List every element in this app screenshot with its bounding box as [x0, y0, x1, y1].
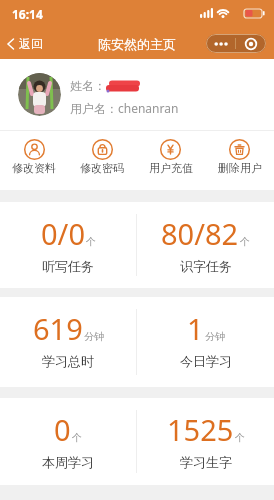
staticText: 本周学习	[42, 454, 94, 470]
staticText: 80/82	[161, 214, 239, 253]
button[interactable]: 80/82	[137, 202, 274, 288]
button[interactable]	[236, 34, 266, 53]
staticText: 学习生字	[180, 454, 232, 470]
button[interactable]: 用户充值	[136, 139, 205, 175]
staticText: 识字任务	[180, 258, 232, 274]
staticText: 619	[33, 309, 83, 348]
staticText: 个	[235, 431, 245, 444]
staticText: 姓名：	[70, 78, 106, 93]
staticText: 个	[86, 235, 96, 248]
button[interactable]: 修改密码	[68, 139, 136, 175]
staticText: 1525	[167, 410, 234, 449]
button[interactable]: 返回	[6, 36, 43, 51]
staticText: 分钟	[84, 330, 104, 343]
staticText: 今日学习	[180, 353, 232, 369]
staticText: 修改资料	[12, 161, 56, 175]
staticText: 用户充值	[149, 161, 193, 175]
staticText: 个	[72, 431, 82, 444]
button[interactable]: 0/0	[0, 202, 136, 288]
button[interactable]: 0	[0, 398, 136, 485]
button[interactable]: 修改资料	[0, 139, 68, 175]
button[interactable]: 1	[137, 297, 274, 387]
staticText: 修改密码	[80, 161, 124, 175]
button[interactable]: 1525	[137, 398, 274, 485]
staticText: 陈安然的主页	[98, 36, 176, 52]
button[interactable]	[206, 34, 235, 53]
staticText: 0/0	[41, 214, 85, 253]
button[interactable]: 619	[0, 297, 136, 387]
staticText: 听写任务	[42, 258, 94, 274]
staticText: 0	[54, 410, 71, 449]
staticText: 个	[240, 235, 250, 248]
staticText: 16:14	[12, 6, 43, 22]
staticText: 删除用户	[218, 161, 262, 175]
staticText: 用户名：chenanran	[70, 100, 179, 116]
staticText: 分钟	[205, 330, 225, 343]
staticText: 学习总时	[42, 353, 94, 369]
staticText: 返回	[19, 36, 43, 51]
button[interactable]: 删除用户	[205, 139, 274, 175]
staticText: 1	[187, 309, 204, 348]
